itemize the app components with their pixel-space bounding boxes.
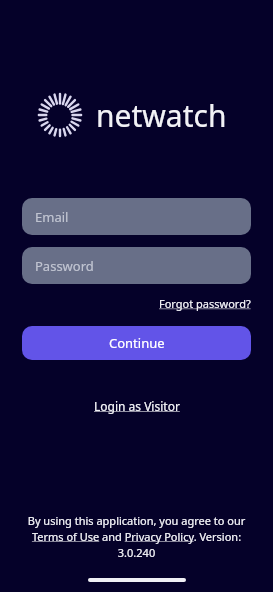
staticText: Password — [35, 257, 94, 275]
button[interactable]: Login as Visitor — [94, 398, 180, 414]
staticText: netwatch — [96, 95, 227, 136]
staticText: Email — [35, 208, 69, 226]
staticText: Continue — [109, 334, 165, 352]
staticText: Login as Visitor — [94, 398, 180, 414]
staticText: Forgot password? — [159, 296, 251, 311]
other: Netwatch logo — [38, 93, 82, 137]
button[interactable]: Forgot password? — [159, 296, 251, 311]
button[interactable]: Password — [22, 247, 251, 284]
staticText: By using this application, you agree to … — [18, 513, 255, 560]
button[interactable]: Email — [22, 198, 251, 235]
button[interactable]: Continue — [22, 326, 251, 360]
